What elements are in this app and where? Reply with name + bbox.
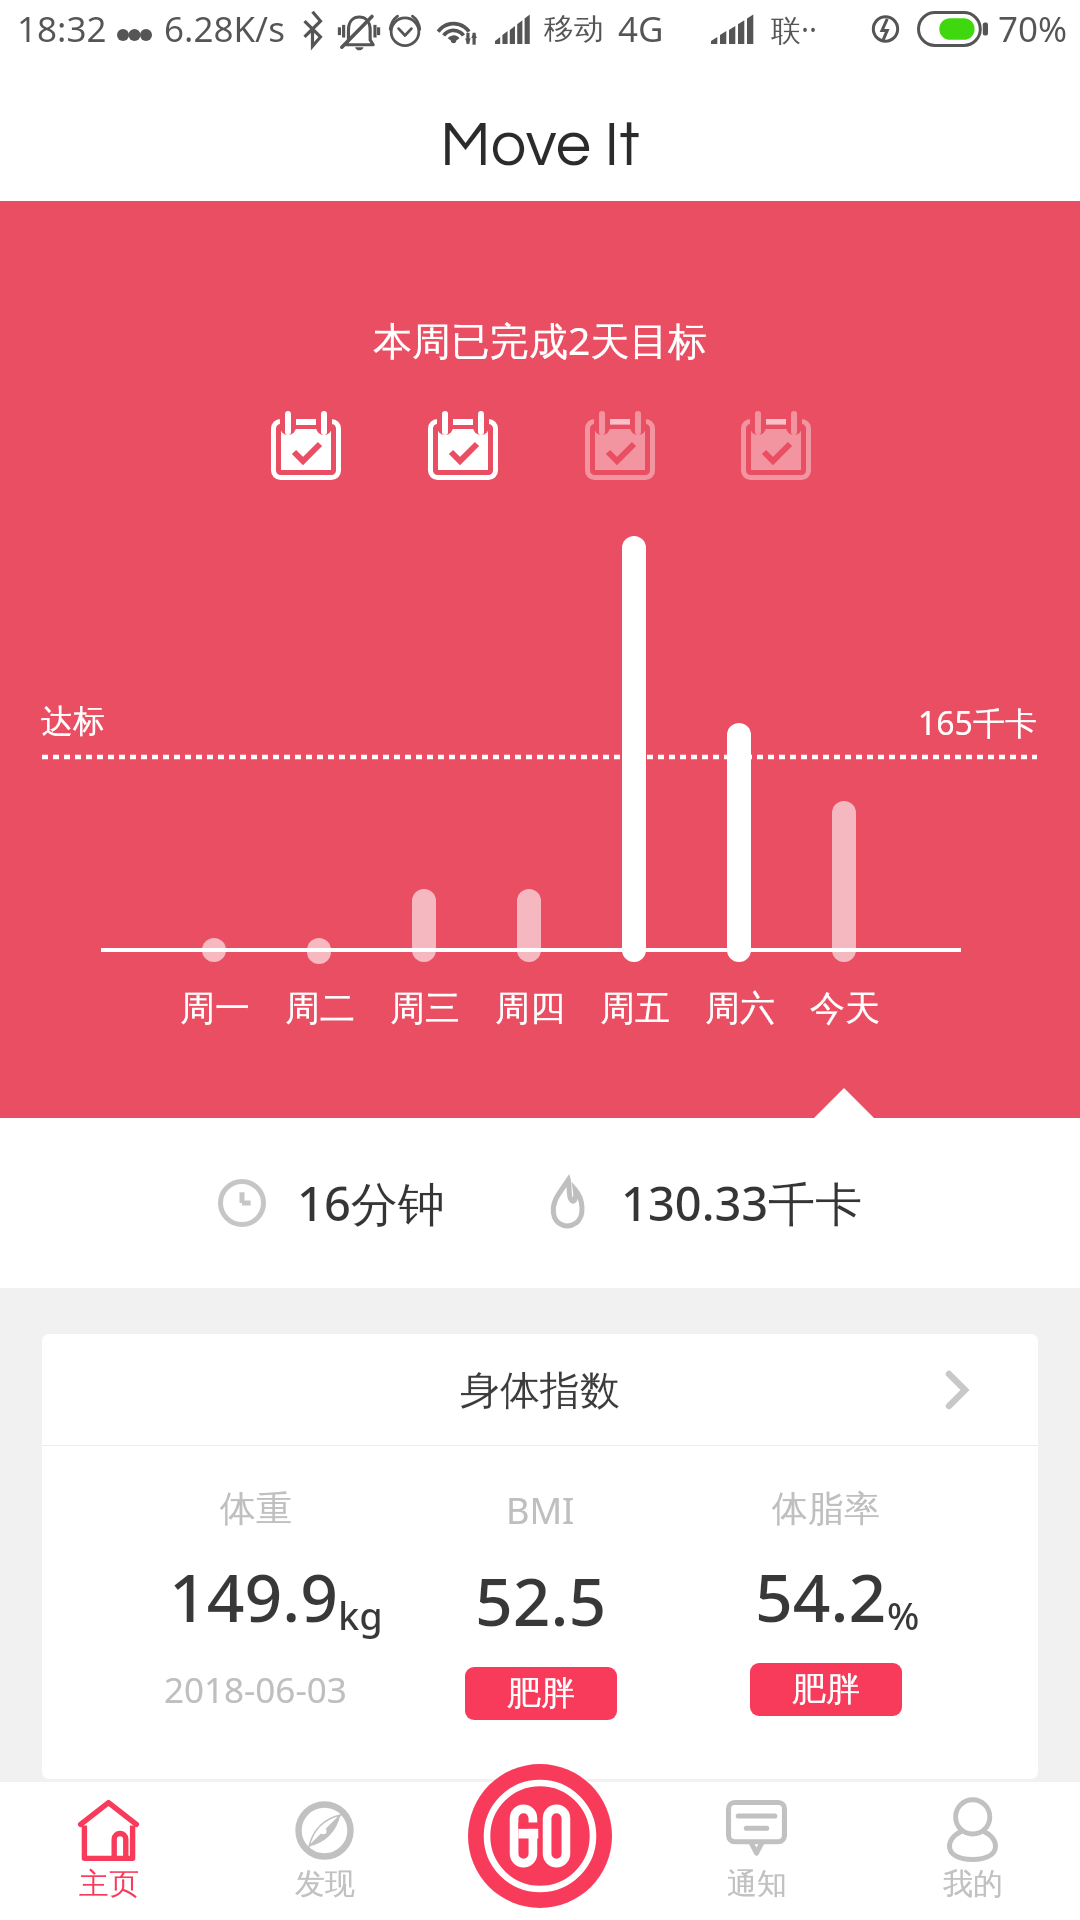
staticText: 达标: [41, 701, 105, 741]
staticText: 6.28K/s: [164, 5, 285, 53]
staticText: 联··: [771, 9, 818, 50]
staticText: 移动: [544, 10, 604, 48]
staticText: 周三: [390, 986, 460, 1030]
staticText: 16分钟: [297, 1171, 445, 1235]
staticText: 149.9: [169, 1551, 338, 1641]
staticText: 周五: [600, 986, 670, 1030]
button[interactable]: GO start workout: [468, 1764, 612, 1908]
staticText: 身体指数: [460, 1365, 620, 1415]
staticText: 肥胖: [792, 1668, 860, 1711]
staticText: 体脂率: [772, 1486, 880, 1531]
staticText: 今天: [810, 986, 880, 1030]
staticText: 2018-06-03: [164, 1666, 347, 1714]
button[interactable]: 肥胖: [750, 1663, 902, 1716]
staticText: 165千卡: [918, 701, 1037, 745]
staticText: 体重: [220, 1486, 292, 1531]
staticText: 发现: [295, 1865, 355, 1903]
staticText: BMI: [506, 1486, 575, 1535]
staticText: kg: [338, 1589, 383, 1641]
staticText: 本周已完成2天目标: [373, 313, 708, 366]
staticText: 我的: [943, 1865, 1003, 1903]
staticText: 18:32: [17, 5, 107, 53]
staticText: 周六: [705, 986, 775, 1030]
button[interactable]: 我的: [864, 1782, 1080, 1920]
staticText: 4G: [618, 5, 664, 53]
staticText: 周二: [285, 986, 355, 1030]
staticText: 通知: [727, 1865, 787, 1903]
staticText: 肥胖: [507, 1672, 575, 1715]
button[interactable]: 身体指数: [42, 1334, 1038, 1445]
staticText: 54.2: [755, 1551, 887, 1641]
button[interactable]: 主页: [0, 1782, 216, 1920]
staticText: 130.33千卡: [621, 1171, 863, 1235]
button[interactable]: 肥胖: [465, 1667, 617, 1720]
staticText: 70%: [998, 5, 1068, 53]
staticText: %: [887, 1589, 920, 1641]
staticText: 周四: [495, 986, 565, 1030]
staticText: 52.5: [475, 1555, 607, 1645]
staticText: 周一: [180, 986, 250, 1030]
button[interactable]: 发现: [216, 1782, 432, 1920]
button[interactable]: 通知: [648, 1782, 864, 1920]
staticText: 主页: [79, 1865, 139, 1903]
staticText: Move It: [440, 113, 640, 178]
